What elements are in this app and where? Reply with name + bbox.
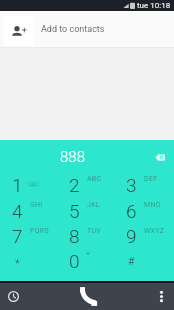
staticText: + [86,250,90,258]
button[interactable]: 1 [0,172,57,198]
staticText: 3 [126,174,137,196]
button[interactable]: 4 [0,198,57,224]
button[interactable]: Recents [0,283,27,310]
staticText: ABC [87,175,102,183]
button[interactable]: # [114,248,171,274]
staticText: MNO [144,201,161,209]
staticText: WXYZ [144,227,165,235]
button[interactable]: Add to contacts [0,11,174,48]
button[interactable]: Backspace [151,148,169,166]
staticText: 5 [69,200,80,222]
button[interactable]: * [0,248,57,274]
staticText: 6 [126,200,137,222]
staticText: * [15,257,20,270]
button[interactable]: Dialpad [67,283,107,310]
staticText: 0 [69,250,80,272]
button[interactable]: 6 [114,198,171,224]
button[interactable]: 8 [57,224,114,248]
staticText: 4 [12,200,23,222]
staticText: 8 [69,225,80,247]
staticText: 7 [12,225,23,247]
staticText: PQRS [30,227,49,235]
button[interactable]: 5 [57,198,114,224]
staticText: JKL [87,201,100,209]
staticText: 9 [126,225,137,247]
button[interactable]: 3 [114,172,171,198]
staticText: 888 [60,148,85,166]
staticText: 2 [69,174,80,196]
staticText: # [128,255,135,268]
button[interactable]: More options [147,283,174,310]
staticText: TUV [87,227,102,235]
staticText: 1 [12,174,23,196]
button[interactable]: 7 [0,224,57,248]
button[interactable]: 9 [114,224,171,248]
button[interactable]: 0 [57,248,114,274]
staticText: tue 10:18 [137,1,171,10]
staticText: Add to contacts [41,24,105,35]
button[interactable]: 2 [57,172,114,198]
staticText: DEF [144,175,158,183]
staticText: GHI [30,201,43,209]
